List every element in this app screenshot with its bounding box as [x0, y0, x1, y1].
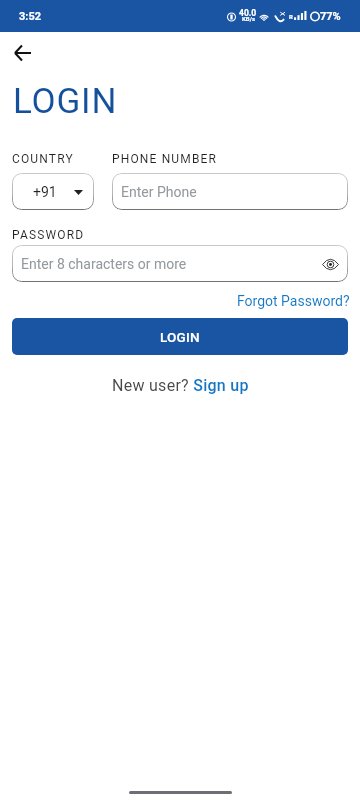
- staticText: Enter Phone: [121, 184, 197, 200]
- staticText: KB/s: [242, 15, 255, 22]
- staticText: 3:52: [19, 10, 42, 23]
- button[interactable]: Forgot Password?: [235, 293, 348, 309]
- button[interactable]: LOGIN: [12, 318, 348, 355]
- staticText: 40.0: [239, 8, 257, 18]
- staticText: LOGIN: [13, 81, 118, 122]
- staticText: R: [289, 13, 293, 20]
- button[interactable]: Enter Phone: [112, 173, 348, 210]
- button[interactable]: Back: [3, 34, 41, 72]
- button[interactable]: Show password: [316, 250, 344, 278]
- staticText: 77%: [320, 10, 341, 23]
- staticText: COUNTRY: [12, 152, 74, 166]
- staticText: PHONE NUMBER: [112, 152, 218, 166]
- staticText: +91: [33, 184, 57, 200]
- staticText: PASSWORD: [12, 228, 85, 242]
- button[interactable]: Enter 8 characters or more: [12, 245, 348, 282]
- staticText: Enter 8 characters or more: [21, 256, 187, 272]
- button[interactable]: New user? Sign up: [112, 376, 249, 395]
- staticText: LOGIN: [160, 329, 200, 345]
- button[interactable]: +91: [12, 173, 94, 210]
